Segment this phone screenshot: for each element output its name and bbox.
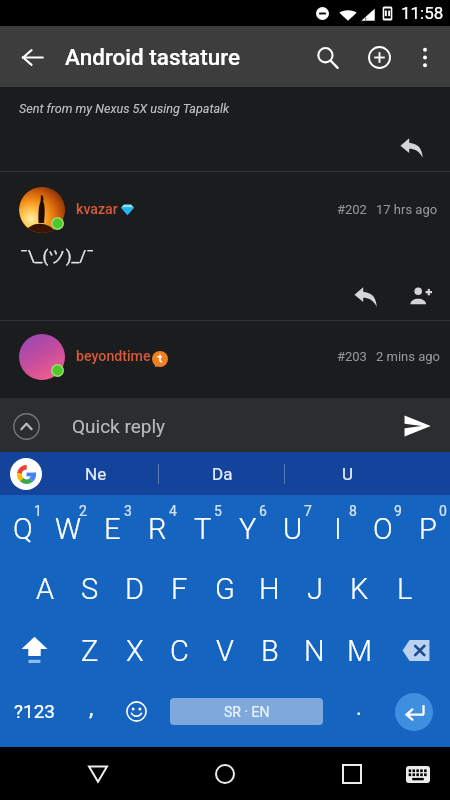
button[interactable]: H xyxy=(247,558,292,620)
staticText: SR · EN xyxy=(224,704,270,720)
button[interactable]: D xyxy=(112,558,157,620)
button[interactable]: B xyxy=(247,620,292,682)
button[interactable]: J xyxy=(292,558,337,620)
button[interactable]: Q xyxy=(0,495,45,558)
staticText: S xyxy=(81,572,99,606)
staticText: L xyxy=(397,572,413,606)
button[interactable]: Shift xyxy=(0,620,68,682)
button[interactable]: . xyxy=(339,689,379,735)
staticText: T xyxy=(194,512,212,546)
button[interactable]: G xyxy=(202,558,247,620)
button[interactable]: Navigate up xyxy=(8,33,56,81)
button[interactable]: A xyxy=(23,558,67,620)
button[interactable]: Avatar xyxy=(19,187,65,233)
staticText: Q xyxy=(13,512,33,546)
button[interactable]: O xyxy=(360,495,405,558)
button[interactable]: W xyxy=(45,495,90,558)
staticText: 17 hrs ago xyxy=(376,202,438,217)
button[interactable]: Recent apps xyxy=(328,750,376,798)
button[interactable]: Backspace xyxy=(382,620,450,682)
staticText: 2 mins ago xyxy=(376,349,440,364)
staticText: U xyxy=(283,512,303,546)
button[interactable]: X xyxy=(112,620,157,682)
staticText: #203 xyxy=(337,349,367,364)
staticText: ¯\_(ツ)_/¯ xyxy=(20,246,95,267)
button[interactable]: E xyxy=(90,495,135,558)
staticText: 0 xyxy=(439,503,447,519)
staticText: 3 xyxy=(124,503,132,519)
staticText: #202 xyxy=(337,202,367,217)
button[interactable]: L xyxy=(382,558,427,620)
button[interactable]: P xyxy=(405,495,450,558)
button[interactable]: Ne xyxy=(33,452,159,495)
staticText: Ne xyxy=(85,464,107,484)
button[interactable]: U xyxy=(285,452,411,495)
button[interactable]: V xyxy=(202,620,247,682)
button[interactable]: Z xyxy=(68,620,112,682)
staticText: Z xyxy=(81,634,99,668)
button[interactable]: F xyxy=(157,558,202,620)
staticText: 7 xyxy=(304,503,312,519)
staticText: kvazar xyxy=(76,201,118,218)
button[interactable]: ?123 xyxy=(5,688,65,734)
staticText: 4 xyxy=(169,503,177,519)
staticText: V xyxy=(216,634,234,668)
staticText: O xyxy=(373,512,393,546)
button[interactable]: I xyxy=(315,495,360,558)
button[interactable]: Enter xyxy=(395,693,433,731)
staticText: C xyxy=(170,634,189,668)
button[interactable]: Add xyxy=(355,33,403,81)
button[interactable]: Search xyxy=(303,33,351,81)
staticText: 6 xyxy=(259,503,267,519)
staticText: beyondtime xyxy=(76,348,151,365)
button[interactable]: T xyxy=(180,495,225,558)
staticText: U xyxy=(342,464,354,484)
staticText: E xyxy=(104,512,121,546)
staticText: , xyxy=(89,695,94,721)
button[interactable]: Avatar xyxy=(19,334,65,380)
staticText: Android tastature xyxy=(65,44,240,70)
button[interactable]: More options xyxy=(402,34,448,80)
staticText: A xyxy=(36,572,55,606)
staticText: H xyxy=(259,572,280,606)
staticText: Y xyxy=(239,512,257,546)
button[interactable]: Y xyxy=(225,495,270,558)
staticText: 9 xyxy=(394,503,402,519)
staticText: X xyxy=(126,634,144,668)
staticText: 5 xyxy=(214,503,222,519)
button[interactable]: Back xyxy=(74,750,122,798)
button[interactable]: C xyxy=(157,620,202,682)
staticText: F xyxy=(171,572,188,606)
staticText: . xyxy=(356,695,362,721)
button[interactable]: M xyxy=(337,620,382,682)
staticText: N xyxy=(304,634,325,668)
button[interactable]: Expand xyxy=(6,405,46,445)
staticText: G xyxy=(215,572,235,606)
button[interactable]: Da xyxy=(159,452,285,495)
button[interactable]: , xyxy=(71,689,111,735)
button[interactable]: Switch keyboard xyxy=(396,752,440,796)
button[interactable]: Google search xyxy=(10,458,42,490)
staticText: R xyxy=(148,512,167,546)
staticText: I xyxy=(334,512,342,546)
button[interactable]: R xyxy=(135,495,180,558)
button[interactable]: Reply xyxy=(388,124,434,170)
staticText: Quick reply xyxy=(72,415,166,437)
button[interactable]: K xyxy=(337,558,382,620)
staticText: B xyxy=(261,634,279,668)
button[interactable]: S xyxy=(67,558,112,620)
staticText: Da xyxy=(212,464,233,484)
button[interactable]: SR · EN xyxy=(170,698,323,725)
button[interactable]: N xyxy=(292,620,337,682)
button[interactable]: Send xyxy=(396,403,440,447)
button[interactable]: Emoji xyxy=(116,688,156,734)
button[interactable]: Home xyxy=(201,750,249,798)
staticText: Sent from my Nexus 5X using Tapatalk xyxy=(19,101,230,116)
staticText: 11:58 xyxy=(401,3,444,23)
staticText: P xyxy=(419,512,437,546)
button[interactable]: U xyxy=(270,495,315,558)
staticText: K xyxy=(350,572,369,606)
button[interactable]: Add friend xyxy=(398,274,442,318)
staticText: J xyxy=(307,572,323,606)
button[interactable]: Reply xyxy=(343,274,387,318)
